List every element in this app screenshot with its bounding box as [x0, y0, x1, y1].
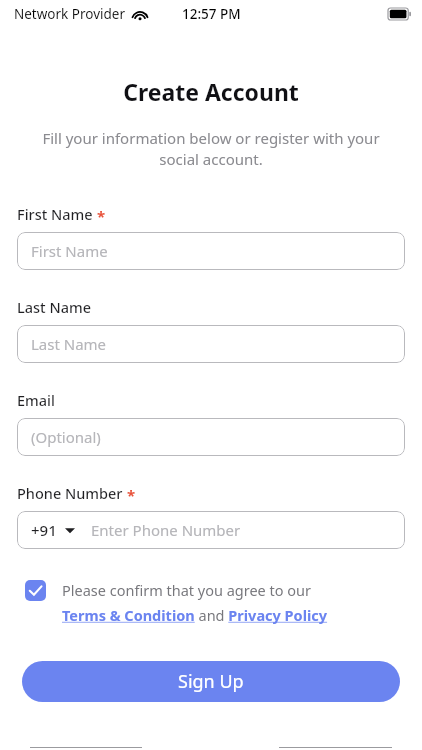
other: Select country code: [65, 527, 75, 534]
button[interactable]: Agree to terms checkbox: [25, 580, 46, 601]
staticText: Network Provider: [14, 5, 126, 23]
staticText: Create Account: [0, 76, 422, 107]
staticText: First Name: [31, 241, 108, 261]
staticText: Please confirm that you agree to our: [62, 580, 312, 600]
button[interactable]: First Name: [17, 232, 405, 270]
staticText: +91: [31, 520, 57, 540]
staticText: First Name: [17, 204, 93, 224]
staticText: (Optional): [31, 427, 101, 447]
button[interactable]: Terms & Condition and Privacy Policy: [62, 605, 328, 625]
staticText: Fill your information below or register …: [32, 128, 390, 170]
staticText: 12:57 PM: [182, 5, 241, 23]
staticText: Sign Up: [178, 669, 244, 694]
button[interactable]: Sign Up: [22, 661, 400, 702]
staticText: Last Name: [17, 297, 92, 317]
staticText: *: [127, 485, 136, 505]
staticText: Last Name: [31, 334, 107, 354]
staticText: *: [97, 206, 106, 226]
staticText: Enter Phone Number: [91, 520, 241, 540]
staticText: Email: [17, 390, 55, 410]
button[interactable]: Last Name: [17, 325, 405, 363]
button[interactable]: (Optional): [17, 418, 405, 456]
staticText: Phone Number: [17, 483, 123, 503]
button[interactable]: +91: [17, 511, 405, 549]
